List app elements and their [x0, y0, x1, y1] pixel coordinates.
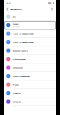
staticText: 9:41: [6, 2, 10, 4]
button[interactable]: Все: [4, 12, 56, 21]
button[interactable]: Музыка: [4, 97, 56, 106]
button[interactable]: Напоминания: [4, 55, 56, 63]
button[interactable]: Сообщения: [4, 63, 56, 72]
staticText: Программы: [10, 8, 22, 10]
staticText: Сообщения: [12, 66, 22, 69]
staticText: ▪▪▪ ▮: [48, 2, 54, 4]
button[interactable]: Центр управления: [4, 72, 56, 80]
button[interactable]: Файлы: [4, 80, 56, 89]
button[interactable]: Чаты и уведомления: [4, 38, 56, 46]
button[interactable]: Назад: [6, 7, 9, 11]
button[interactable]: Экранное время: [4, 46, 56, 55]
button[interactable]: Сводка: [4, 21, 56, 29]
staticText: Файлы: [12, 83, 19, 86]
staticText: Музыка: [12, 100, 20, 103]
button[interactable]: Чаты и уведомления: [4, 29, 56, 38]
staticText: Все: [12, 15, 15, 18]
staticText: Напоминания: [12, 58, 25, 61]
staticText: Чаты и уведомления: [12, 41, 33, 44]
staticText: Новости: [12, 92, 20, 95]
staticText: Центр управления: [12, 75, 29, 78]
button[interactable]: Новости: [4, 89, 56, 97]
staticText: Сводка: [12, 22, 18, 25]
staticText: Чаты и уведомления: [12, 32, 33, 35]
staticText: Экранное время: [12, 49, 27, 52]
staticText: Сегодня: [12, 25, 19, 28]
button[interactable]: Поиск: [51, 8, 54, 10]
